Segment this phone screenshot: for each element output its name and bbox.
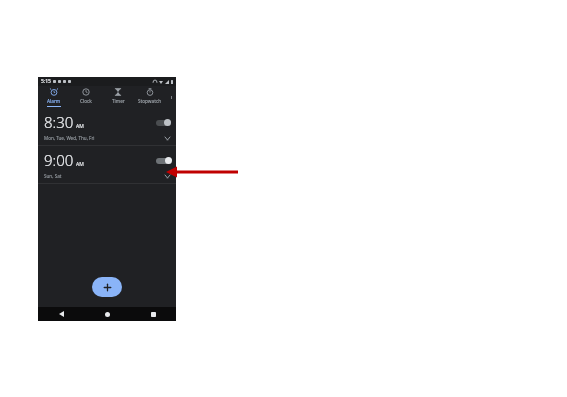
staticText: 5:15 [41, 78, 51, 85]
staticText: AM [76, 161, 84, 168]
staticText: Mon, Tue, Wed, Thu, Fri [44, 135, 95, 141]
button[interactable]: Clock [70, 86, 102, 108]
button[interactable]: Expand alarm [163, 134, 171, 142]
button[interactable]: 8:30 [38, 108, 176, 145]
button[interactable]: Stopwatch [134, 86, 166, 108]
staticText: AM [76, 123, 84, 130]
button[interactable]: Add alarm [92, 277, 122, 297]
button[interactable]: Timer [102, 86, 134, 108]
button[interactable]: Alarm off [156, 119, 171, 126]
staticText: Stopwatch [138, 98, 162, 104]
staticText: Timer [112, 98, 125, 104]
staticText: 9:00 [44, 150, 74, 170]
button[interactable]: Recent apps [130, 307, 176, 321]
staticText: 8:30 [44, 112, 74, 132]
button[interactable]: Alarm on [156, 157, 171, 164]
staticText: Sun, Sat [44, 173, 62, 179]
button[interactable]: Home [84, 307, 130, 321]
button[interactable]: Alarm [38, 86, 70, 108]
button[interactable]: Back [38, 307, 84, 321]
staticText: Alarm [47, 98, 61, 104]
button[interactable]: 9:00 [38, 146, 176, 183]
button[interactable]: More options [166, 86, 176, 108]
staticText: Clock [80, 98, 92, 104]
button[interactable]: Expand alarm [163, 172, 171, 180]
